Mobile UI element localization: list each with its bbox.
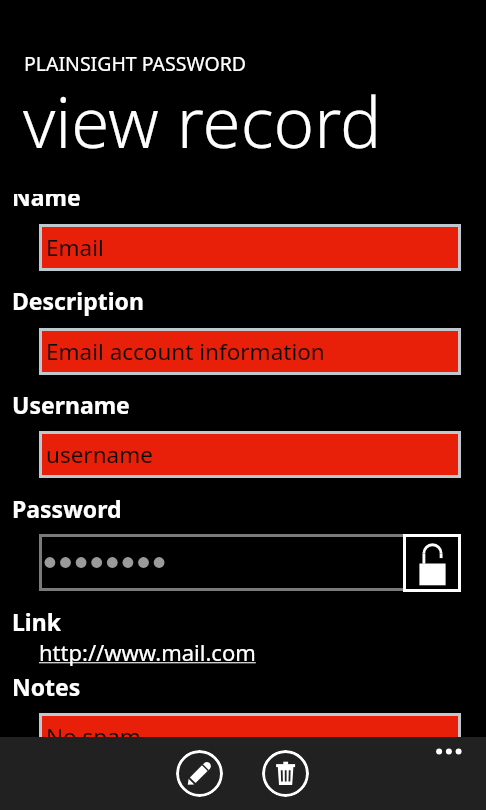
staticText: No spam (46, 721, 141, 737)
staticText: Email (46, 232, 104, 263)
button[interactable]: Delete (262, 750, 309, 797)
button[interactable]: Show password (403, 534, 461, 592)
button[interactable]: Email (42, 227, 458, 268)
staticText: Name (12, 194, 81, 212)
button[interactable]: Email account information (42, 331, 458, 372)
staticText: Password (12, 493, 122, 524)
staticText: view record (23, 74, 382, 168)
button[interactable]: No spam (42, 716, 458, 737)
staticText: Username (12, 389, 130, 420)
button[interactable]: Edit (176, 750, 223, 797)
staticText: Description (12, 285, 144, 316)
staticText: username (46, 439, 153, 470)
staticText: Email account information (46, 336, 325, 367)
staticText: Link (12, 606, 61, 637)
button[interactable]: More options (424, 737, 474, 767)
button[interactable]: http://www.mail.com (39, 637, 256, 667)
button[interactable]: username (42, 434, 458, 475)
staticText: Notes (12, 671, 81, 702)
staticText: PLAINSIGHT PASSWORD (24, 50, 247, 77)
button[interactable] (39, 534, 403, 591)
